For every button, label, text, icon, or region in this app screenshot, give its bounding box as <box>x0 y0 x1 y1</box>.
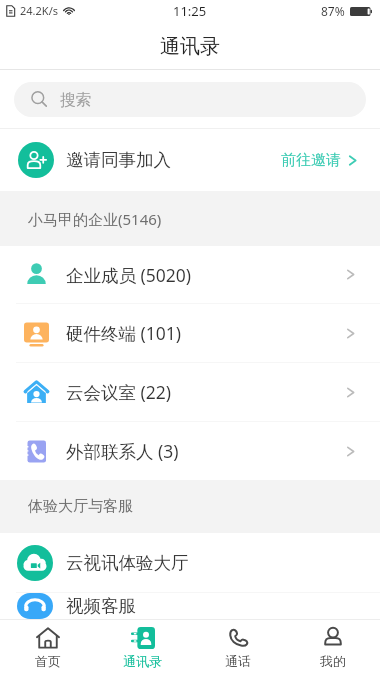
button[interactable]: 云视讯体验大厅 <box>0 533 380 592</box>
staticText: 前往邀请 <box>281 151 341 170</box>
staticText: 小马甲的企业(5146) <box>28 209 162 229</box>
button[interactable]: 云会议室 (22) <box>0 363 380 421</box>
staticText: 11:25 <box>173 2 207 20</box>
staticText: 企业成员 (5020) <box>66 263 192 287</box>
button[interactable]: 通讯录 <box>95 620 190 675</box>
staticText: 邀请同事加入 <box>66 149 171 171</box>
button[interactable]: 首页 <box>0 620 95 675</box>
staticText: 24.2K/s <box>20 3 58 18</box>
staticText: 外部联系人 (3) <box>66 439 179 463</box>
button[interactable]: 邀请同事加入 <box>0 129 380 191</box>
staticText: 首页 <box>35 653 61 669</box>
button[interactable]: 搜索 <box>14 82 366 117</box>
staticText: 云视讯体验大厅 <box>66 552 189 574</box>
button[interactable]: 企业成员 (5020) <box>0 246 380 303</box>
button[interactable]: 硬件终端 (101) <box>0 304 380 362</box>
button[interactable]: 视频客服 <box>0 593 380 619</box>
button[interactable]: 外部联系人 (3) <box>0 422 380 480</box>
staticText: 通话 <box>225 653 251 669</box>
staticText: 视频客服 <box>66 595 136 617</box>
staticText: 搜索 <box>60 90 91 110</box>
staticText: 体验大厅与客服 <box>28 497 133 516</box>
button[interactable]: 我的 <box>285 620 380 675</box>
button[interactable]: 通话 <box>190 620 285 675</box>
staticText: 我的 <box>320 653 346 669</box>
staticText: 87% <box>321 3 345 19</box>
staticText: 硬件终端 (101) <box>66 321 182 345</box>
staticText: 通讯录 <box>160 34 220 59</box>
staticText: 云会议室 (22) <box>66 380 172 404</box>
staticText: 通讯录 <box>123 653 162 669</box>
